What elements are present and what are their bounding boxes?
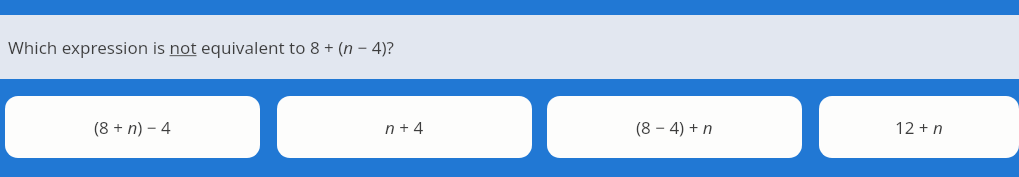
staticText: (8 − 4) + n <box>636 116 713 139</box>
button[interactable]: n + 4 <box>277 96 532 158</box>
button[interactable]: (8 + n) − 4 <box>5 96 260 158</box>
staticText: 12 + n <box>895 116 943 139</box>
staticText: Which expression is not equivalent to 8 … <box>8 36 394 59</box>
button[interactable]: (8 − 4) + n <box>547 96 802 158</box>
staticText: (8 + n) − 4 <box>94 116 171 139</box>
staticText: n + 4 <box>385 116 424 139</box>
button[interactable]: 12 + n <box>819 96 1019 158</box>
